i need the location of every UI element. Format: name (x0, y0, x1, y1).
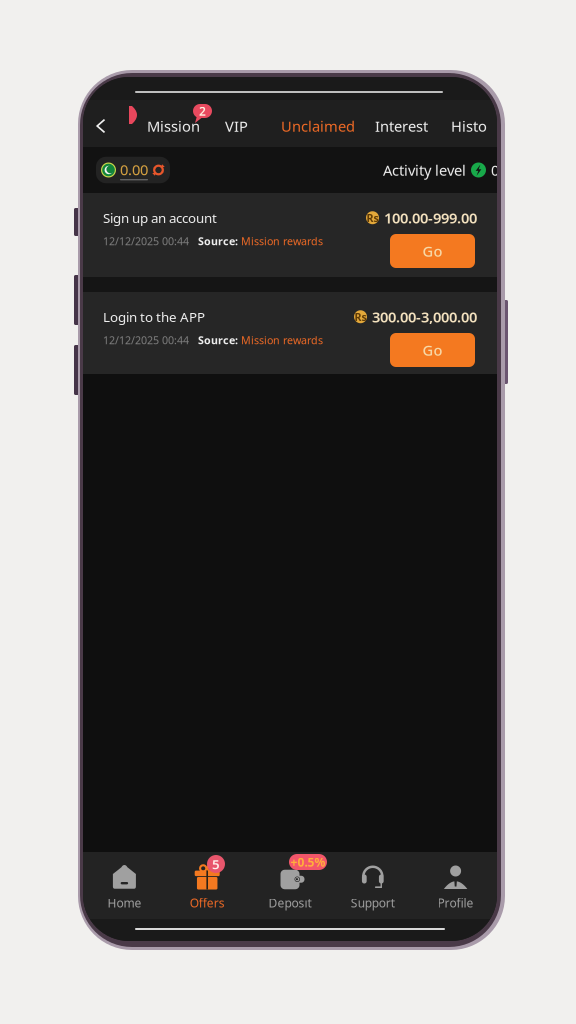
button[interactable]: Profile (414, 864, 497, 911)
staticText: 5 (212, 855, 220, 873)
button[interactable]: Sign up an account (83, 193, 497, 277)
button[interactable]: Interest (375, 106, 428, 146)
staticText: Mission rewards (241, 234, 323, 248)
button[interactable]: Deposit (249, 864, 331, 911)
staticText: Profile (438, 895, 474, 911)
button[interactable]: Histo (451, 106, 487, 146)
staticText: Activity level (383, 160, 466, 180)
staticText: 2 (199, 103, 206, 119)
staticText: Source: (189, 333, 241, 347)
staticText: 0 (491, 160, 499, 180)
button[interactable]: Go (390, 234, 475, 268)
staticText: VIP (225, 116, 248, 136)
staticText: Support (351, 895, 395, 911)
button[interactable]: VIP (225, 106, 248, 146)
button[interactable]: Go (390, 333, 475, 367)
button[interactable]: Home (83, 864, 166, 911)
staticText: 300.00-3,000.00 (372, 307, 477, 326)
staticText: +0.5% (290, 854, 325, 870)
staticText: Login to the APP (103, 308, 205, 326)
staticText: 12/12/2025 00:44 (103, 234, 189, 248)
staticText: Rs (354, 310, 366, 324)
staticText: Interest (375, 116, 428, 136)
staticText: 12/12/2025 00:44 (103, 333, 189, 347)
staticText: Histo (451, 116, 487, 136)
staticText: Sign up an account (103, 209, 217, 227)
staticText: Home (107, 895, 141, 911)
button[interactable]: Mission (147, 106, 200, 146)
staticText: Offers (190, 895, 225, 911)
staticText: Mission rewards (241, 333, 323, 347)
staticText: 0.00 (120, 160, 148, 179)
button[interactable]: Login to the APP (83, 292, 497, 374)
button[interactable]: Support (331, 864, 414, 911)
button[interactable]: Offers (166, 864, 249, 911)
staticText: Deposit (268, 895, 311, 911)
staticText: Rs (366, 211, 378, 225)
button[interactable]: Unclaimed (281, 106, 355, 146)
staticText: Mission (147, 116, 200, 136)
staticText: 100.00-999.00 (384, 208, 477, 227)
staticText: Unclaimed (281, 116, 355, 136)
staticText: Go (422, 241, 442, 261)
button[interactable]: Back (86, 106, 116, 146)
staticText: Go (422, 340, 442, 360)
staticText: Source: (189, 234, 241, 248)
